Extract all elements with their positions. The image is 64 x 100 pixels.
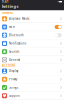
staticText: 9:41 <box>2 0 9 3</box>
button[interactable]: Sounds <box>0 48 64 56</box>
staticText: Support <box>9 94 20 97</box>
staticText: Wi-Fi <box>9 25 15 29</box>
staticText: GENERAL <box>2 11 13 14</box>
staticText: Sounds <box>9 50 19 53</box>
staticText: General <box>9 58 20 62</box>
staticText: ACCOUNT <box>2 64 16 67</box>
staticText: Display <box>9 69 18 73</box>
button[interactable]: Privacy <box>0 75 64 83</box>
button[interactable]: Display <box>0 67 64 75</box>
button[interactable]: Bluetooth <box>0 31 64 39</box>
staticText: Privacy <box>9 77 17 81</box>
button[interactable]: Support <box>0 92 64 100</box>
button[interactable]: Storage <box>0 84 64 92</box>
staticText: Airplane Mode <box>9 17 30 20</box>
button[interactable]: Airplane Mode <box>0 15 64 23</box>
button[interactable]: Wi-Fi <box>0 23 64 31</box>
staticText: Bluetooth <box>9 33 24 37</box>
staticText: Settings <box>2 4 19 9</box>
button[interactable]: General <box>0 56 64 64</box>
button[interactable]: Notifications <box>0 39 64 48</box>
staticText: Notifications <box>9 42 26 45</box>
staticText: Storage <box>9 86 19 89</box>
